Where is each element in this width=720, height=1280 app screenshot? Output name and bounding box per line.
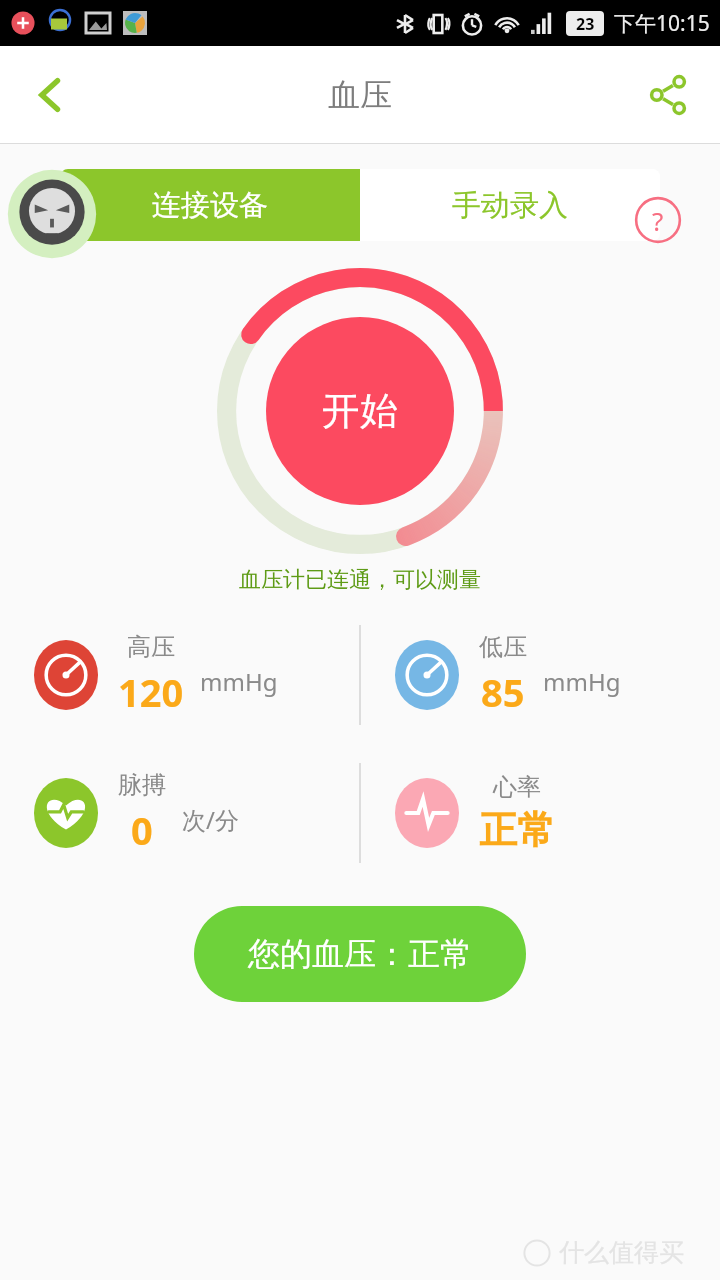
button[interactable]: 手动录入: [360, 169, 660, 241]
staticText: 次/分: [182, 803, 239, 836]
button[interactable]: 开始: [215, 266, 505, 556]
button[interactable]: Share: [638, 65, 698, 125]
staticText: 下午10:15: [614, 9, 710, 38]
staticText: ?: [652, 203, 664, 238]
staticText: 23: [576, 13, 595, 35]
staticText: 血压计已连通，可以测量: [239, 566, 481, 594]
staticText: 85: [481, 666, 525, 718]
staticText: 您的血压：正常: [248, 934, 472, 974]
button[interactable]: User avatar: [4, 166, 100, 262]
button[interactable]: 心率: [395, 758, 712, 868]
staticText: 120: [118, 666, 184, 718]
staticText: 高压: [127, 632, 175, 662]
staticText: 开始: [322, 387, 398, 435]
staticText: mmHg: [200, 665, 278, 698]
button[interactable]: 高压: [34, 620, 351, 730]
button[interactable]: Back: [20, 65, 80, 125]
button[interactable]: 您的血压：正常: [194, 906, 526, 1002]
staticText: 什么值得买: [559, 1237, 684, 1268]
button[interactable]: 开始: [266, 317, 454, 505]
button[interactable]: 脉搏: [34, 758, 351, 868]
staticText: 连接设备: [152, 187, 268, 224]
button[interactable]: Help: [632, 194, 684, 246]
staticText: 手动录入: [452, 187, 568, 224]
staticText: 脉搏: [118, 770, 166, 800]
button[interactable]: 低压: [395, 620, 712, 730]
staticText: 心率: [493, 772, 541, 802]
staticText: mmHg: [543, 665, 621, 698]
staticText: 0: [131, 804, 153, 856]
staticText: 低压: [479, 632, 527, 662]
staticText: 血压: [328, 75, 392, 115]
button[interactable]: 连接设备: [60, 169, 360, 241]
staticText: 正常: [479, 806, 555, 854]
